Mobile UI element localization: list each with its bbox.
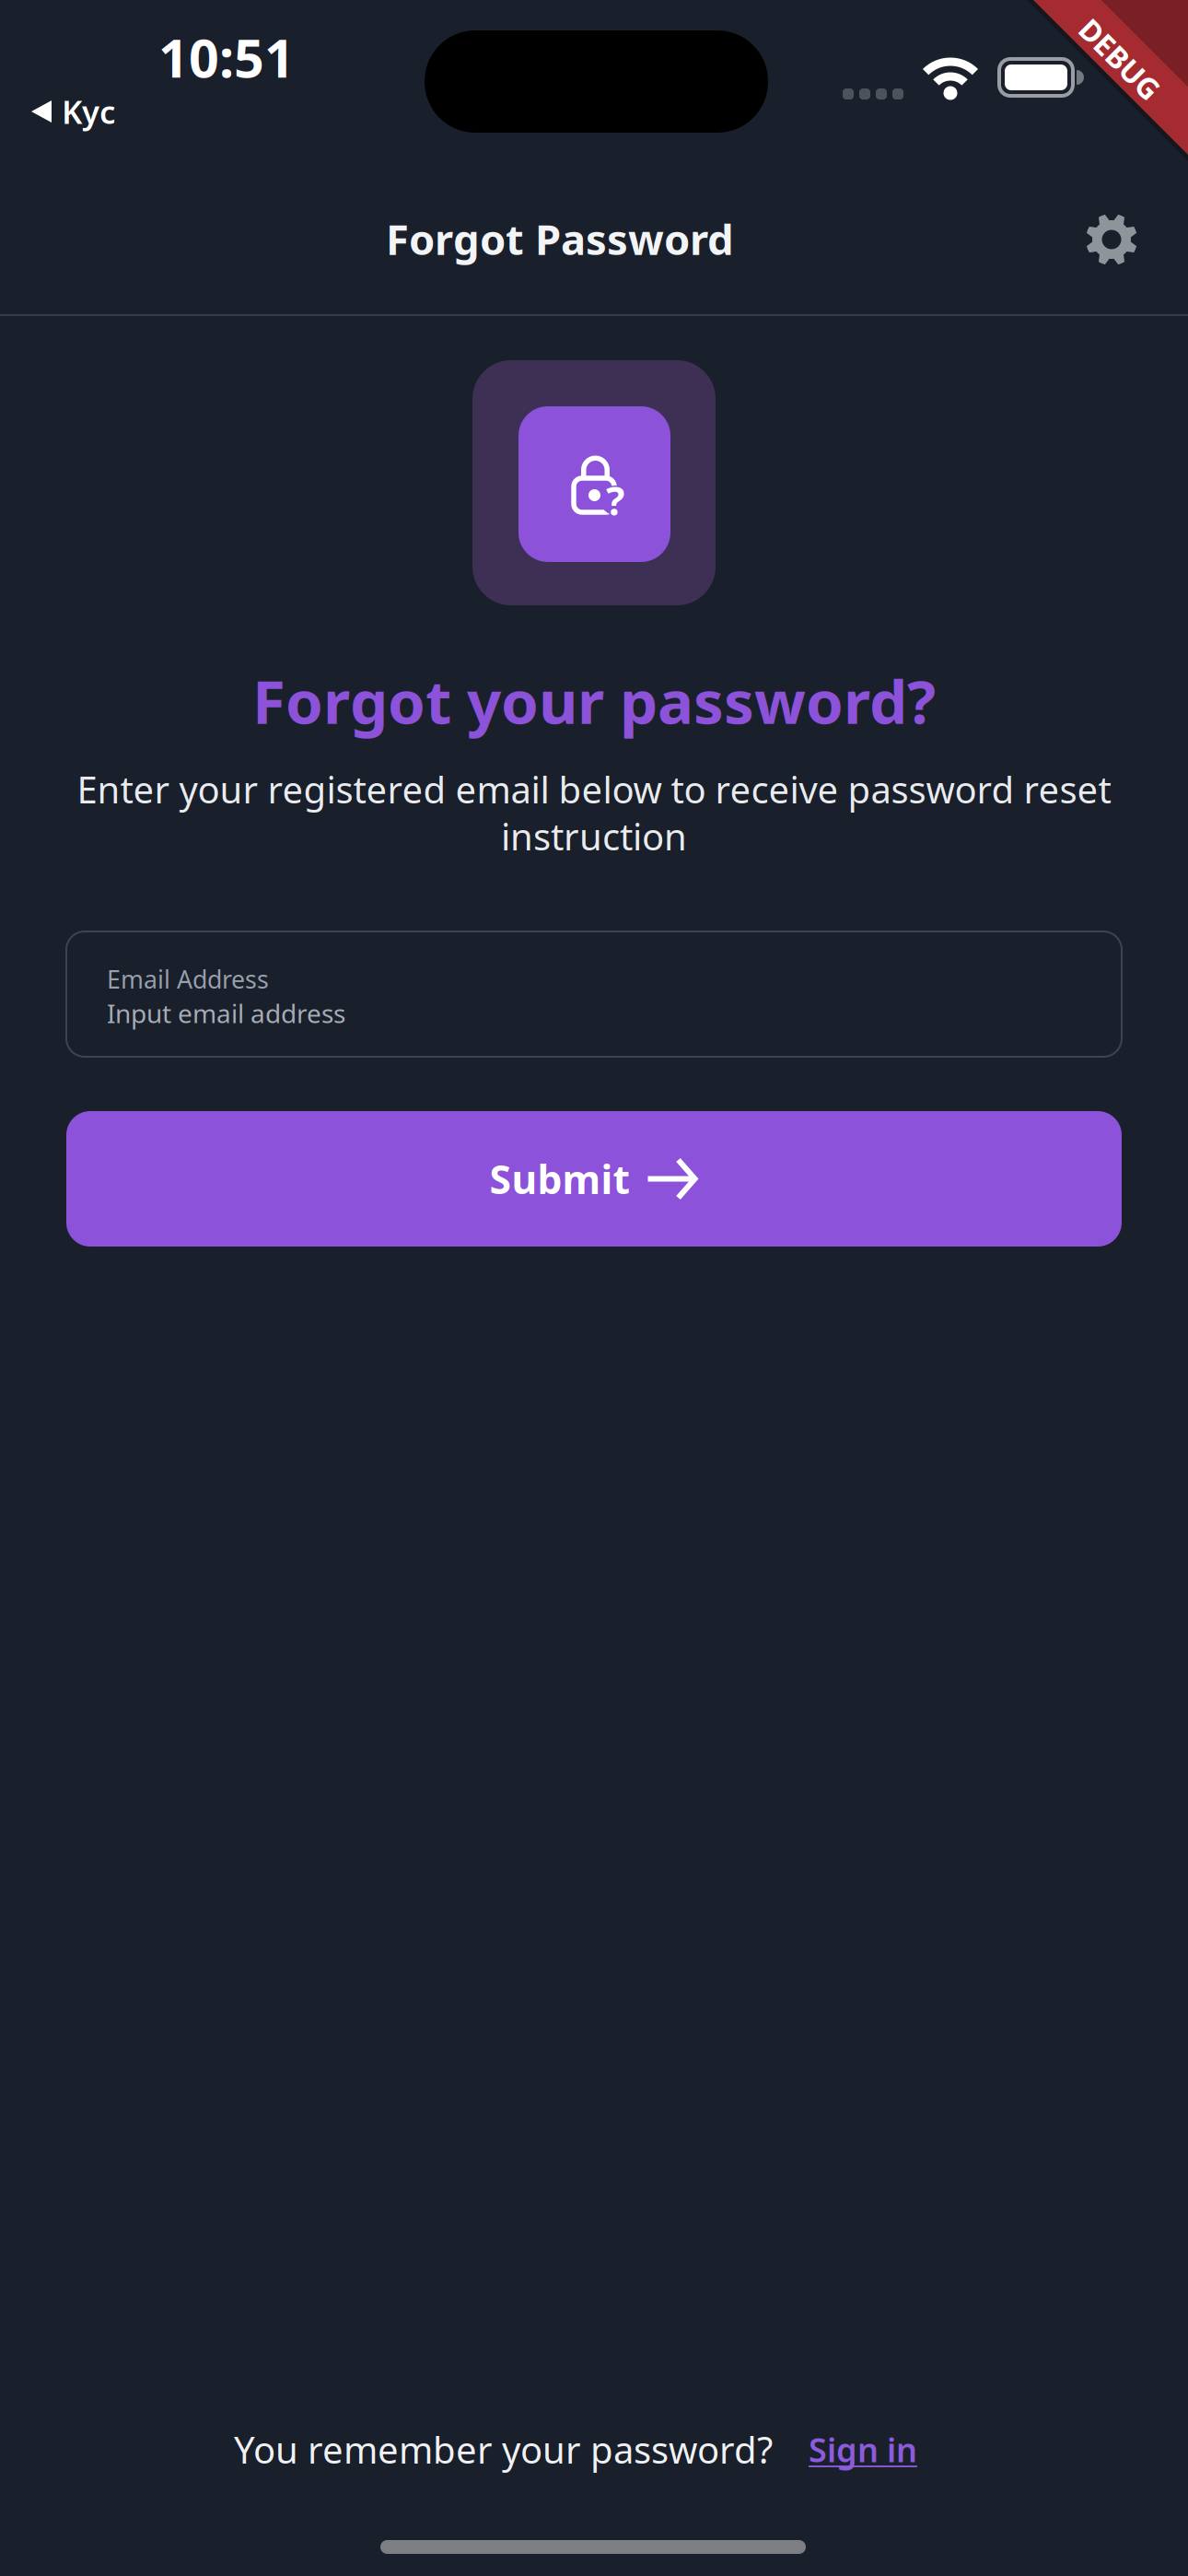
staticText: You remember your password? (234, 2425, 773, 2474)
staticText: Kyc (62, 90, 115, 133)
staticText: Forgot your password? (252, 661, 936, 741)
staticText: Sign in (809, 2427, 917, 2471)
button[interactable]: Back to Kyc (31, 90, 115, 133)
staticText: instruction (501, 812, 687, 861)
staticText: ? (606, 474, 624, 526)
staticText: Input email address (107, 996, 345, 1030)
staticText: 10:51 (158, 22, 295, 92)
staticText: Forgot Password (386, 211, 734, 266)
staticText: Email Address (107, 963, 269, 995)
button[interactable]: Sign in (809, 2427, 917, 2471)
button[interactable]: Email address input (66, 931, 1122, 1057)
button[interactable]: Submit (66, 1111, 1122, 1247)
staticText: Enter your registered email below to rec… (77, 765, 1111, 814)
staticText: Submit (489, 1153, 630, 1205)
staticText: DEBUG (1070, 39, 1170, 79)
button[interactable]: Settings (1085, 213, 1138, 266)
